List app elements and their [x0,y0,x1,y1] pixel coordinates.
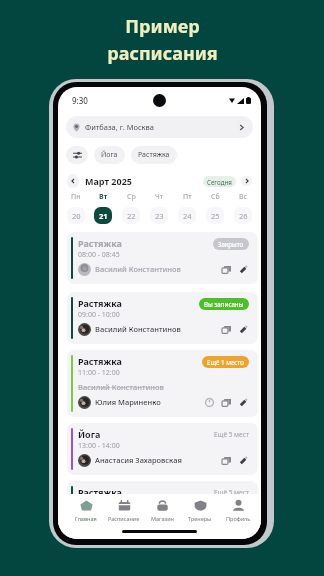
staticText: Василий Константинов [95,513,181,523]
staticText: Сегодня [207,178,232,186]
staticText: 09:00 - 10:00 [78,310,120,320]
button[interactable]: Копировать [221,513,232,524]
staticText: Растяжка [138,150,170,160]
button[interactable]: Сегодня [203,176,236,187]
staticText: расписания [107,41,218,66]
button[interactable]: Фитбаза, г. Москва [66,116,253,138]
button[interactable]: Копировать [221,455,232,466]
button[interactable]: Расписание [105,494,143,527]
button[interactable]: Предыдущий месяц [67,174,79,188]
button[interactable]: 24 [178,207,196,224]
staticText: Вт [99,192,108,202]
staticText: Пт [183,192,192,202]
staticText: Пн [71,192,81,202]
staticText: Тренеры [188,515,212,522]
staticText: Главная [75,515,97,522]
button[interactable]: Профиль [219,494,257,527]
staticText: Растяжка [78,486,122,498]
button[interactable]: Растяжка [67,481,258,533]
button[interactable]: Растяжка [67,292,258,344]
staticText: 25 [211,211,220,221]
button[interactable]: Йога [94,146,125,164]
button[interactable]: Растяжка [131,146,177,164]
button[interactable]: Растяжка [67,350,258,417]
staticText: Расписание [108,515,140,522]
button[interactable]: 22 [122,207,140,224]
staticText: 11:00 - 12:00 [78,368,120,378]
staticText: 15:00 - 16:00 [78,499,120,509]
staticText: 20 [72,211,81,221]
staticText: Чт [155,192,163,202]
staticText: Растяжка [78,237,122,249]
staticText: Йога [78,428,101,440]
button[interactable]: 25 [206,207,224,224]
staticText: Юлия Мариненко [95,397,161,407]
staticText: Закрыто [218,240,244,248]
staticText: Вс [239,192,248,202]
staticText: Василий Константинов [78,382,164,392]
staticText: Фитбаза, г. Москва [85,122,154,132]
button[interactable]: Фильтры [66,146,88,164]
staticText: Растяжка [78,355,122,367]
staticText: Вы записаны [204,300,244,308]
staticText: Анастасия Захаровская [95,455,182,465]
staticText: Ещё 1 место [207,358,244,366]
staticText: Профиль [226,515,251,522]
button[interactable]: 20 [67,207,85,224]
button[interactable]: Копировать [221,324,232,335]
button[interactable]: Обновить [204,397,215,408]
button[interactable]: Главная [67,494,105,527]
staticText: 21 [99,211,108,221]
staticText: Сб [211,192,220,202]
staticText: Ср [127,192,136,202]
staticText: Магазин [151,515,174,522]
button[interactable]: Ещё 1 место [202,356,249,368]
staticText: Растяжка [78,297,122,309]
button[interactable]: Тренеры [181,494,219,527]
staticText: Василий Константинов [95,264,181,274]
staticText: 24 [183,211,192,221]
staticText: 23 [155,211,164,221]
staticText: 9:30 [72,95,88,106]
button[interactable]: Копировать [221,397,232,408]
staticText: 22 [127,211,136,221]
staticText: Василий Константинов [95,324,181,334]
staticText: Ещё 5 мест [214,430,249,439]
staticText: 13:00 - 14:00 [78,441,120,451]
staticText: Ещё 5 мест [214,488,249,497]
button[interactable]: Вы записаны [199,298,249,310]
button[interactable]: 21 [94,207,112,224]
button[interactable]: Редактировать [238,455,249,466]
button[interactable]: Редактировать [238,264,249,275]
button[interactable]: 23 [150,207,168,224]
button[interactable]: Растяжка [67,232,258,284]
button[interactable]: 26 [234,207,252,224]
staticText: Март 2025 [85,175,132,187]
staticText: Пример [125,14,200,39]
button[interactable]: Копировать [221,264,232,275]
staticText: Йога [101,150,118,160]
button[interactable]: Магазин [143,494,181,527]
staticText: 08:00 - 08:45 [78,250,120,260]
button[interactable]: Йога [67,423,258,475]
button[interactable]: Редактировать [238,324,249,335]
button[interactable]: Следующий месяц [241,176,252,186]
button[interactable]: Закрыто [213,238,249,250]
staticText: 26 [239,211,248,221]
button[interactable]: Редактировать [238,513,249,524]
button[interactable]: Редактировать [238,397,249,408]
